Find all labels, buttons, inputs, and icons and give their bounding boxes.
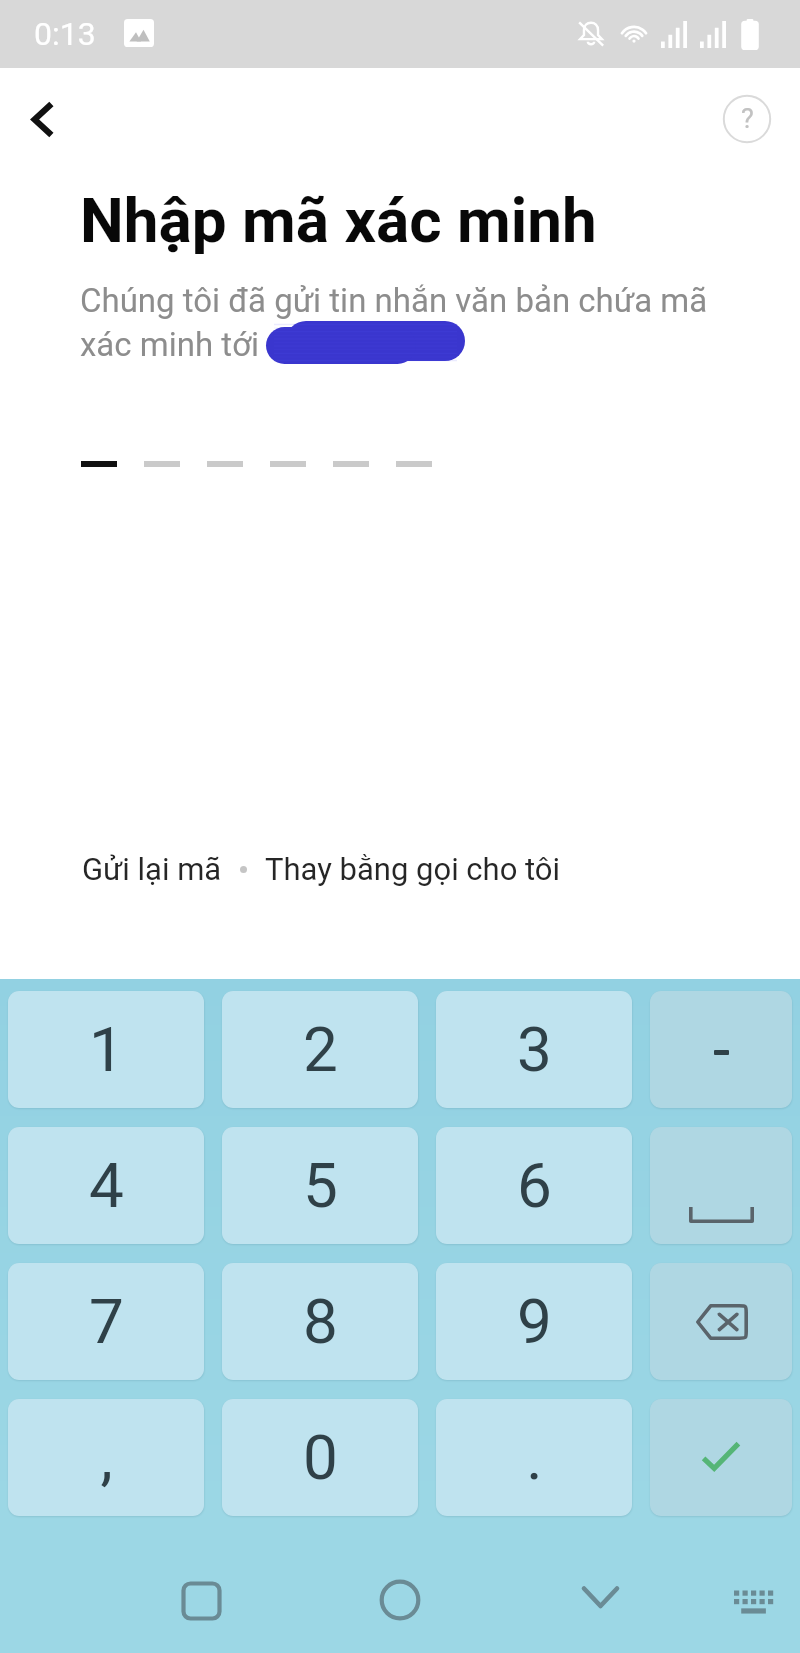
- staticText: 3: [517, 1013, 552, 1086]
- button[interactable]: Home: [363, 1562, 437, 1636]
- button[interactable]: 9: [436, 1263, 632, 1380]
- staticText: 0:13: [34, 15, 96, 53]
- staticText: Thay bằng gọi cho tôi: [265, 851, 561, 887]
- button[interactable]: Minus: [650, 991, 792, 1108]
- button[interactable]: 5: [222, 1127, 418, 1244]
- staticText: 4: [89, 1149, 124, 1222]
- staticText: Nhập mã xác minh: [80, 184, 597, 257]
- button[interactable]: 4: [8, 1127, 204, 1244]
- staticText: 1: [89, 1013, 124, 1086]
- button[interactable]: 1: [8, 991, 204, 1108]
- button[interactable]: Gửi lại mã: [82, 851, 222, 887]
- staticText: 6: [517, 1149, 552, 1222]
- staticText: 9: [517, 1285, 552, 1358]
- button[interactable]: Help: [711, 83, 783, 155]
- button[interactable]: ,: [8, 1399, 204, 1516]
- button[interactable]: Back: [15, 77, 81, 143]
- button[interactable]: Delete: [650, 1263, 792, 1380]
- button[interactable]: Thay bằng gọi cho tôi: [265, 851, 561, 887]
- staticText: 5: [303, 1149, 338, 1222]
- button[interactable]: Hide keyboard: [563, 1562, 637, 1636]
- button[interactable]: Keyboard: [713, 1558, 787, 1632]
- staticText: Gửi lại mã: [82, 851, 222, 887]
- button[interactable]: 6: [436, 1127, 632, 1244]
- button[interactable]: .: [436, 1399, 632, 1516]
- button[interactable]: 2: [222, 991, 418, 1108]
- staticText: Chúng tôi đã gửi tin nhắn văn bản chứa m…: [80, 281, 708, 364]
- button[interactable]: 8: [222, 1263, 418, 1380]
- button[interactable]: Recents: [164, 1563, 238, 1637]
- button[interactable]: 7: [8, 1263, 204, 1380]
- staticText: .: [526, 1421, 543, 1494]
- staticText: 2: [303, 1013, 338, 1086]
- button[interactable]: 3: [436, 991, 632, 1108]
- button[interactable]: Done: [650, 1399, 792, 1516]
- button[interactable]: 0: [222, 1399, 418, 1516]
- staticText: ,: [100, 1421, 113, 1494]
- staticText: ?: [741, 103, 754, 135]
- button[interactable]: Space: [650, 1127, 792, 1244]
- staticText: 0: [303, 1421, 338, 1494]
- staticText: 8: [303, 1285, 338, 1358]
- staticText: 7: [89, 1285, 124, 1358]
